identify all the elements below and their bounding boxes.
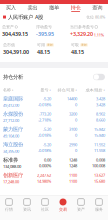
staticText: 0 xyxy=(75,132,77,138)
button[interactable]: 撤单 xyxy=(43,4,65,12)
staticText: 查询 xyxy=(92,4,102,11)
button[interactable]: 皇庭国际 xyxy=(0,94,108,109)
staticText: 48.15 xyxy=(71,48,84,55)
staticText: 标准券 xyxy=(3,157,18,163)
staticText: +3,329.20 xyxy=(70,30,93,37)
staticText: 2990 xyxy=(69,142,77,147)
staticText: 创新医疗 xyxy=(3,172,23,178)
staticText: -2.718% xyxy=(38,117,51,122)
staticText: 15.842 xyxy=(94,127,105,132)
button[interactable]: 标准券 xyxy=(0,155,108,170)
staticText: 持仓/可用 xyxy=(58,87,75,93)
staticText: 资讯 xyxy=(23,207,31,212)
staticText: 蒙力医疗 xyxy=(3,126,23,133)
staticText: 0 xyxy=(75,102,77,107)
staticText: 0.00 xyxy=(44,157,51,162)
staticText: 3200 xyxy=(69,111,77,117)
staticText: 3100 xyxy=(69,127,77,132)
staticText: 14400 xyxy=(67,96,77,101)
button[interactable]: 社区 xyxy=(36,198,54,220)
staticText: 304,391.00 xyxy=(3,48,29,55)
button[interactable]: 持仓 xyxy=(65,4,86,12)
staticText: 海立股份 xyxy=(3,141,23,148)
staticText: 成本/现价 xyxy=(86,87,103,93)
staticText: 134,088.00 xyxy=(3,164,21,169)
button[interactable]: 海立股份 xyxy=(0,140,108,155)
staticText: 3.428 xyxy=(96,102,105,107)
staticText: 持仓 xyxy=(71,4,81,11)
staticText: 13.627 xyxy=(94,172,105,178)
staticText: -0.018% xyxy=(38,102,51,107)
staticText: 2,247.62 xyxy=(37,172,51,178)
staticText: 8.902 xyxy=(96,111,105,117)
staticText: 社区 xyxy=(41,207,49,212)
staticText: 49,104.00 xyxy=(3,133,19,138)
staticText: -0.018% xyxy=(38,148,51,153)
staticText: 人民币账户 A股 xyxy=(6,13,43,21)
button[interactable]: 持仓分析开关 xyxy=(93,74,105,80)
staticText: 3.428 xyxy=(96,96,105,101)
staticText: 1.11% xyxy=(94,32,104,37)
staticText: ↓ xyxy=(49,88,51,91)
staticText: 34,395.00 xyxy=(3,148,19,154)
staticText: ↓ xyxy=(103,88,105,91)
staticText: 0 xyxy=(75,117,77,122)
staticText: 49,412.00 xyxy=(3,103,19,108)
staticText: -0.018% xyxy=(38,132,51,138)
staticText: 理财 xyxy=(81,43,87,47)
staticText: 资产 xyxy=(77,207,85,212)
staticText: -5.20 xyxy=(43,142,51,147)
staticText: 8.660 xyxy=(96,117,105,122)
staticText: 0.000% xyxy=(39,163,51,168)
staticText: 买入 xyxy=(6,4,16,11)
staticText: 100.008 xyxy=(92,163,105,168)
staticText: 总市值 xyxy=(3,42,15,47)
staticText: 理财 xyxy=(47,43,53,47)
button[interactable]: 服务 xyxy=(90,198,108,220)
staticText: 撤单 xyxy=(49,4,59,11)
staticText: 15.680 xyxy=(94,178,105,184)
staticText: 服务 xyxy=(95,207,103,212)
staticText: 14.980% xyxy=(37,178,51,184)
staticText: 皇庭国际 xyxy=(3,95,23,102)
staticText: 卖出 xyxy=(27,4,37,11)
button[interactable]: 资讯 xyxy=(18,198,36,220)
staticText: 仓位 80.8% xyxy=(86,14,105,20)
button[interactable]: 行情 xyxy=(0,198,18,220)
staticText: 交易 xyxy=(59,207,67,212)
button[interactable]: 交易 xyxy=(54,198,72,220)
staticText: ↓ xyxy=(75,88,77,91)
staticText: 总资产 xyxy=(2,24,14,29)
staticText: 15.840 xyxy=(94,132,105,138)
button[interactable]: 创新医疗 xyxy=(0,170,108,186)
staticText: 48.15 xyxy=(37,48,50,55)
staticText: 可取 xyxy=(71,42,79,47)
staticText: 当日参考盈亏 xyxy=(70,24,94,29)
button[interactable]: 永煤股份 xyxy=(0,109,108,125)
staticText: 0 xyxy=(75,148,77,153)
staticText: 名称 xyxy=(3,87,11,92)
button[interactable]: 卖出 xyxy=(22,4,43,12)
button[interactable]: 资产 xyxy=(72,198,90,220)
button[interactable]: 查询 xyxy=(86,4,108,12)
staticText: 浮动盈亏 xyxy=(36,24,52,29)
staticText: 1248 xyxy=(69,157,77,162)
staticText: 11.552 xyxy=(94,142,105,147)
staticText: -773.20 xyxy=(39,111,51,117)
button[interactable]: 蒙力医疗 xyxy=(0,125,108,140)
staticText: 可用 xyxy=(37,42,45,47)
staticText: 持仓分析 xyxy=(3,74,23,80)
staticText: 永煤股份 xyxy=(3,111,23,117)
staticText: 17,248.00 xyxy=(3,179,19,184)
staticText: 行情 xyxy=(5,207,13,212)
staticText: -5.20 xyxy=(43,96,51,101)
staticText: 1100 xyxy=(69,172,77,178)
staticText: 1248 xyxy=(69,163,77,168)
button[interactable]: 买入 xyxy=(0,4,22,12)
staticText: 0.008 xyxy=(96,157,105,162)
staticText: -395.95 xyxy=(36,30,54,37)
staticText: 1100 xyxy=(69,178,77,184)
staticText: 304,439.15 xyxy=(2,30,28,37)
staticText: 27,712.00 xyxy=(3,118,19,123)
staticText: ↓ xyxy=(11,88,13,91)
